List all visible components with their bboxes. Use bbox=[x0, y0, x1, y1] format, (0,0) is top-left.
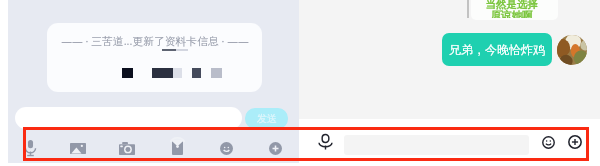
button[interactable]: Gallery bbox=[56, 133, 100, 163]
staticText: 当然是选择 原谅她啊 bbox=[485, 0, 538, 18]
button[interactable] bbox=[15, 107, 242, 129]
button[interactable]: 发送 bbox=[245, 108, 288, 129]
button[interactable]: Emoji bbox=[204, 133, 248, 163]
staticText: 兄弟，今晚恰炸鸡 bbox=[449, 42, 545, 57]
button[interactable]: Avatar bbox=[557, 35, 587, 65]
button[interactable]: Camera bbox=[105, 133, 149, 163]
staticText: 发送 bbox=[257, 112, 277, 125]
button[interactable]: Red packet bbox=[155, 133, 199, 163]
button[interactable]: Emoji bbox=[535, 129, 561, 155]
button[interactable]: More bbox=[253, 133, 297, 163]
button[interactable]: 兄弟，今晚恰炸鸡 bbox=[442, 33, 552, 66]
button[interactable]: More bbox=[562, 129, 588, 155]
button[interactable]: Voice bbox=[312, 129, 338, 155]
staticText: —— · 三苦道...更新了资料卡信息 · —— bbox=[61, 33, 249, 48]
button[interactable]: Voice bbox=[8, 133, 52, 163]
